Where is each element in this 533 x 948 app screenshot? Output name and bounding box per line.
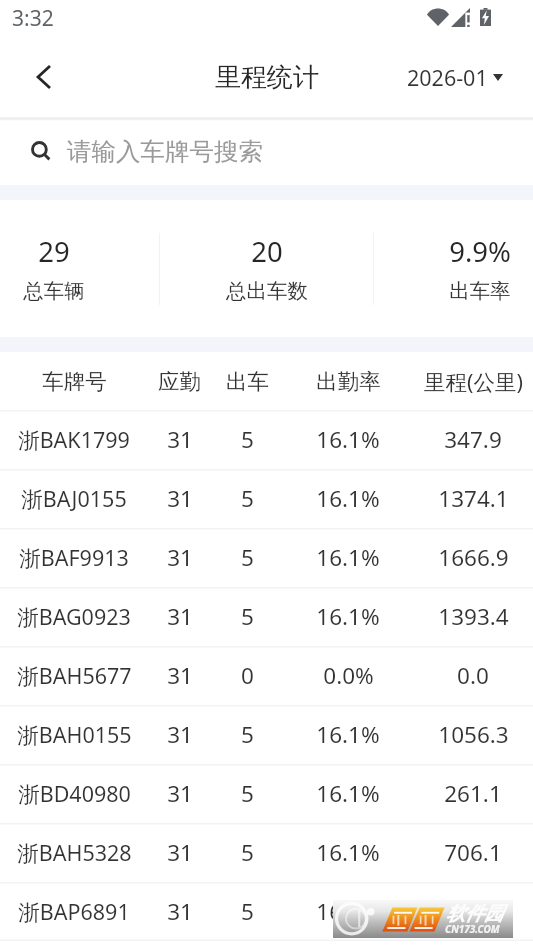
button[interactable]: 浙BAH5328 (0, 823, 533, 882)
staticText: 出车 (226, 368, 269, 395)
button[interactable]: 浙BAJ0155 (0, 469, 533, 528)
staticText: 出勤率 (316, 368, 381, 395)
staticText: 5 (241, 601, 254, 632)
staticText: 浙BAG0923 (17, 602, 131, 631)
staticText: 3:32 (12, 4, 54, 33)
staticText: 5 (241, 778, 254, 809)
button[interactable]: 29 (0, 233, 139, 304)
staticText: 31 (167, 719, 193, 750)
staticText: 20 (251, 233, 283, 270)
staticText: 16.1% (316, 424, 380, 455)
button[interactable]: 浙BAH5677 (0, 646, 533, 705)
staticText: 1374.1 (438, 483, 509, 514)
staticText: 车牌号 (42, 368, 107, 395)
staticText: 0.0 (457, 660, 489, 691)
button[interactable]: 浙BAK1799 (0, 410, 533, 469)
staticText: 521.7 (444, 896, 502, 927)
staticText: 浙BAH5677 (17, 661, 132, 690)
staticText: 5 (241, 424, 254, 455)
staticText: 5 (241, 719, 254, 750)
staticText: 5 (241, 896, 254, 927)
staticText: 1666.9 (438, 542, 509, 573)
staticText: 16.1% (316, 483, 380, 514)
button[interactable]: 浙BD40980 (0, 764, 533, 823)
staticText: 2026-01 (407, 63, 488, 92)
staticText: 31 (167, 483, 193, 514)
staticText: 总车辆 (23, 278, 85, 304)
button[interactable]: 浙BAF9913 (0, 528, 533, 587)
staticText: 347.9 (444, 424, 502, 455)
staticText: 16.1% (316, 778, 380, 809)
staticText: 浙BAH0155 (17, 720, 132, 749)
staticText: 16.1% (316, 719, 380, 750)
button[interactable]: 浙BAH0155 (0, 705, 533, 764)
button[interactable]: 2026-01 (394, 53, 515, 109)
staticText: 浙BAP6891 (18, 897, 130, 926)
staticText: 31 (167, 601, 193, 632)
staticText: 里程(公里) (424, 367, 523, 396)
staticText: 出车率 (449, 278, 511, 304)
staticText: 浙BAH5328 (17, 838, 132, 867)
staticText: 16.1% (316, 837, 380, 868)
staticText: 31 (167, 424, 193, 455)
staticText: 706.1 (444, 837, 502, 868)
staticText: 浙BAK1799 (18, 425, 130, 454)
button[interactable]: 浙BAG0923 (0, 587, 533, 646)
button[interactable]: 9.9% (395, 233, 533, 304)
staticText: 里程统计 (215, 61, 319, 94)
staticText: 应勤 (158, 368, 201, 395)
staticText: 5 (241, 483, 254, 514)
staticText: 1056.3 (438, 719, 509, 750)
staticText: 总出车数 (226, 278, 308, 304)
staticText: 0 (241, 660, 254, 691)
button[interactable]: 20 (182, 233, 352, 304)
staticText: 16.1% (316, 896, 380, 927)
staticText: 浙BAJ0155 (21, 484, 127, 513)
staticText: 5 (241, 542, 254, 573)
staticText: 0.0% (323, 660, 374, 691)
staticText: 浙BAF9913 (19, 543, 129, 572)
staticText: 261.1 (444, 778, 502, 809)
staticText: 31 (167, 542, 193, 573)
staticText: 29 (38, 233, 70, 270)
staticText: 5 (241, 837, 254, 868)
staticText: 31 (167, 837, 193, 868)
button[interactable]: 请输入车牌号搜索 (0, 118, 533, 185)
staticText: 1393.4 (438, 601, 509, 632)
staticText: 软件园 (446, 902, 503, 926)
staticText: 请输入车牌号搜索 (67, 136, 263, 167)
staticText: 31 (167, 660, 193, 691)
staticText: 16.1% (316, 542, 380, 573)
button[interactable]: 浙BAP6891 (0, 882, 533, 941)
staticText: 31 (167, 896, 193, 927)
staticText: 31 (167, 778, 193, 809)
staticText: 浙BD40980 (18, 779, 131, 808)
staticText: 9.9% (449, 233, 511, 270)
staticText: CN173.COM (445, 922, 500, 936)
button[interactable]: Back (20, 50, 68, 98)
staticText: 16.1% (316, 601, 380, 632)
